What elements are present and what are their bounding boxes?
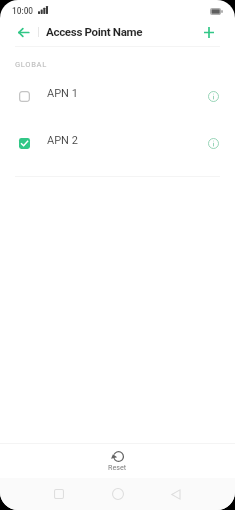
- button[interactable]: Back: [162, 478, 190, 510]
- button[interactable]: APN 2: [0, 120, 235, 167]
- button[interactable]: Recent apps: [45, 478, 73, 510]
- button[interactable]: Home: [104, 478, 132, 510]
- button[interactable]: Reset: [92, 444, 143, 475]
- staticText: 10:00: [12, 6, 34, 16]
- button[interactable]: Access point details: [202, 85, 224, 107]
- staticText: GLOBAL: [15, 60, 47, 69]
- button[interactable]: Add access point: [197, 20, 221, 44]
- staticText: Access Point Name: [46, 25, 143, 39]
- button[interactable]: Back: [11, 20, 36, 45]
- staticText: APN 1: [47, 87, 78, 100]
- staticText: APN 2: [47, 134, 78, 147]
- button[interactable]: Access point details: [202, 132, 224, 154]
- staticText: Reset: [108, 463, 127, 471]
- button[interactable]: APN 1: [0, 73, 235, 120]
